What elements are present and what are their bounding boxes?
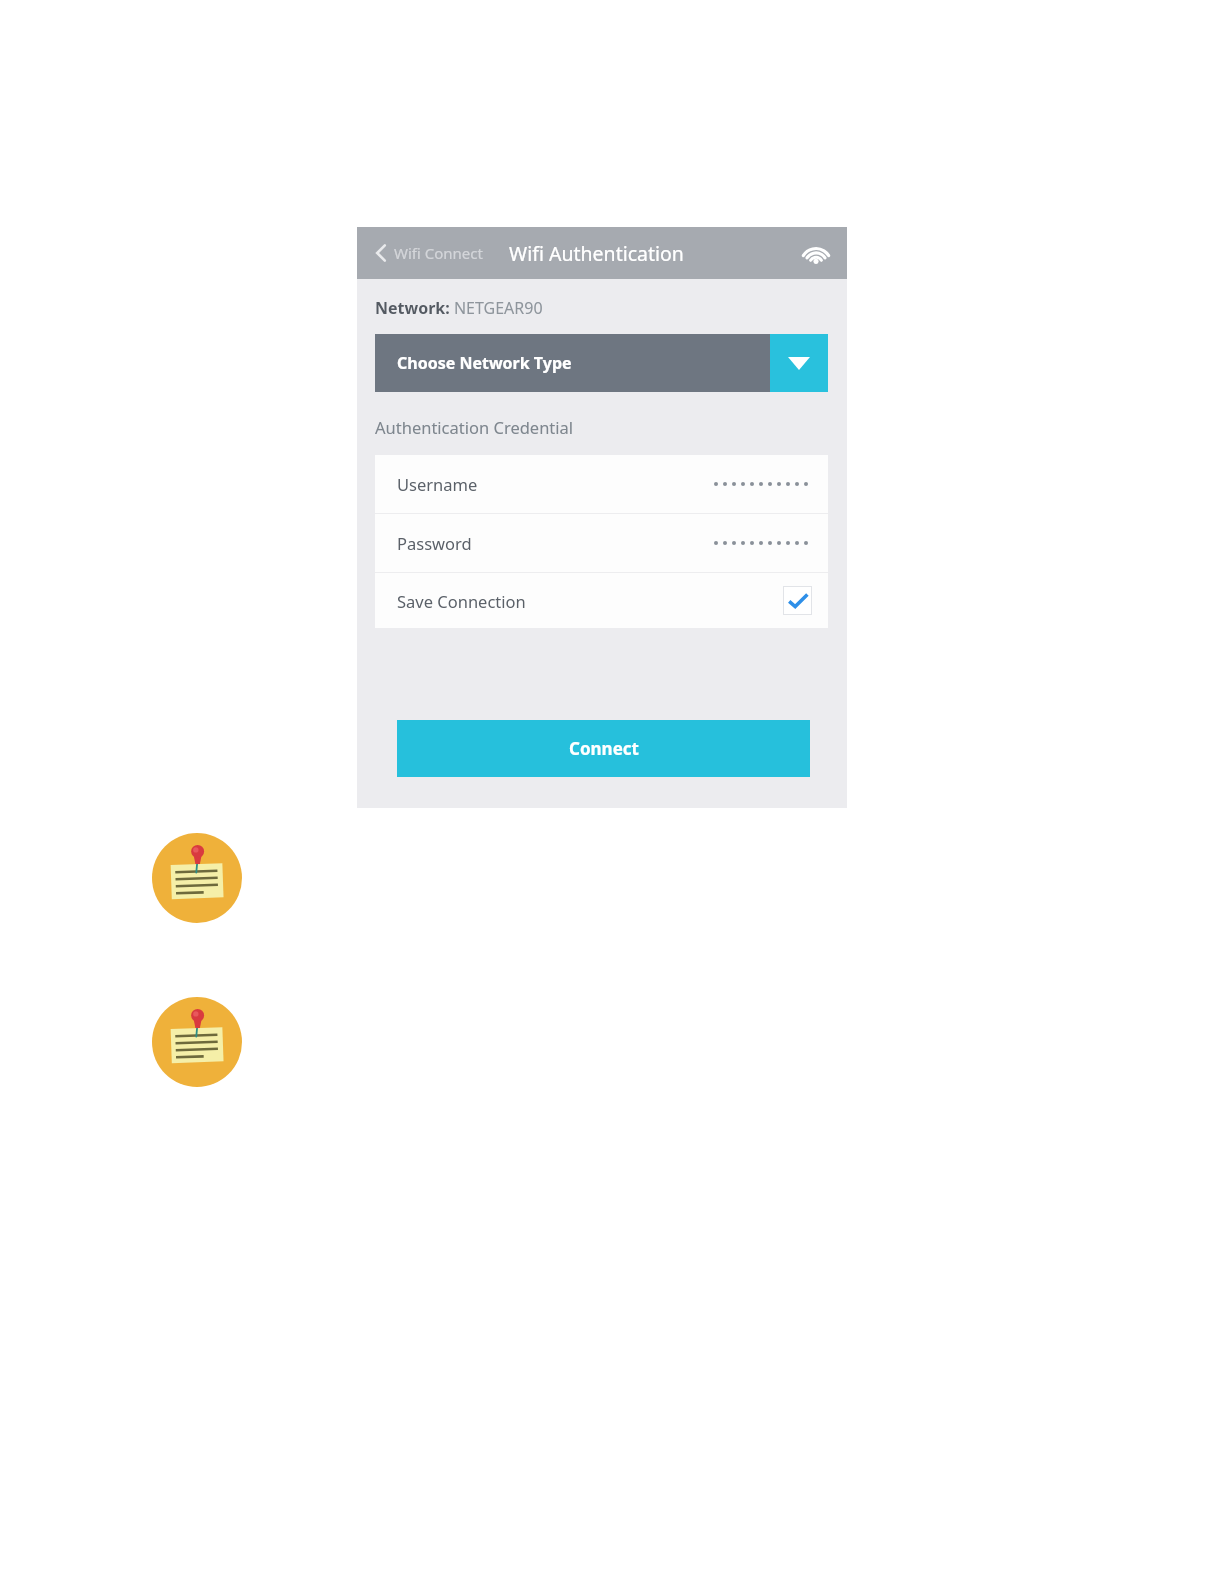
- button[interactable]: Password: [375, 514, 828, 572]
- button[interactable]: Note: [152, 997, 242, 1087]
- button[interactable]: Choose Network Type: [375, 334, 828, 392]
- staticText: Wifi Connect: [394, 243, 483, 263]
- staticText: Username: [397, 473, 478, 495]
- button[interactable]: Save Connection: [375, 573, 828, 628]
- button[interactable]: Wifi Connect: [371, 237, 487, 269]
- staticText: Password: [397, 532, 472, 554]
- button[interactable]: Note: [152, 833, 242, 923]
- staticText: Save Connection: [397, 590, 526, 612]
- staticText: Choose Network Type: [397, 352, 572, 374]
- staticText: Connect: [569, 737, 639, 760]
- staticText: Authentication Credential: [375, 416, 574, 438]
- button[interactable]: Wifi status: [797, 234, 835, 272]
- button[interactable]: Connect: [397, 720, 810, 777]
- staticText: Network: NETGEAR90: [375, 297, 543, 319]
- button[interactable]: Username: [375, 455, 828, 513]
- staticText: Wifi Authentication: [509, 240, 684, 267]
